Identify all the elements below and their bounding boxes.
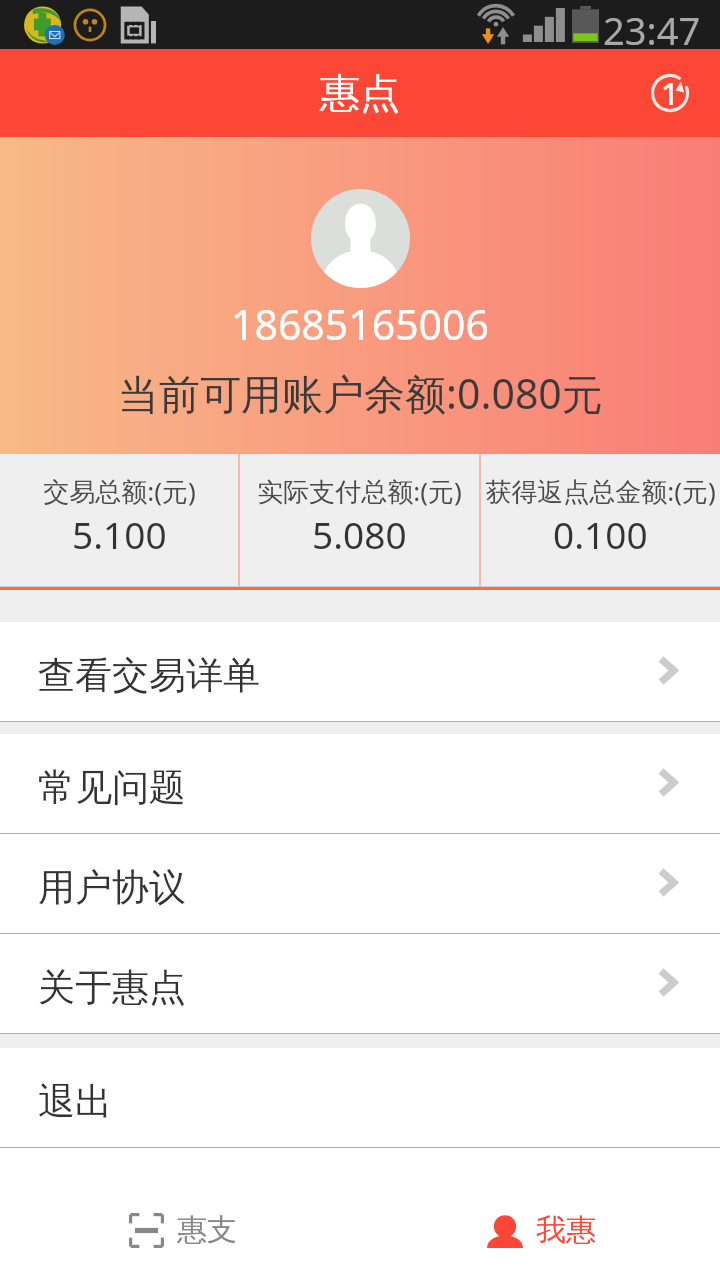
staticText: 实际支付总额:(元) [257, 473, 462, 509]
staticText: 常见问题 [38, 764, 186, 811]
button[interactable]: 惠支 [4, 1180, 362, 1280]
button[interactable]: Refresh [642, 65, 698, 121]
button[interactable]: 用户协议 [0, 834, 720, 933]
button[interactable]: 关于惠点 [0, 934, 720, 1033]
staticText: 当前可用账户余额:0.080元 [118, 365, 603, 421]
staticText: 23:47 [603, 4, 701, 49]
staticText: 用户协议 [38, 864, 186, 911]
staticText: 18685165006 [231, 296, 489, 352]
staticText: 交易总额:(元) [43, 473, 196, 509]
staticText: 惠支 [177, 1211, 237, 1249]
button[interactable]: 退出 [0, 1048, 720, 1147]
staticText: 我惠 [536, 1211, 596, 1249]
staticText: 5.080 [312, 509, 407, 559]
staticText: 退出 [38, 1078, 112, 1125]
staticText: 0.100 [553, 509, 648, 559]
staticText: 查看交易详单 [38, 652, 260, 699]
button[interactable]: 我惠 [362, 1180, 720, 1280]
staticText: 关于惠点 [38, 964, 186, 1011]
staticText: 获得返点总金额:(元) [485, 473, 716, 509]
button[interactable]: 常见问题 [0, 734, 720, 833]
staticText: 5.100 [72, 509, 167, 559]
button[interactable]: 查看交易详单 [0, 622, 720, 721]
staticText: 1 [661, 72, 679, 114]
staticText: 惠点 [320, 68, 400, 118]
